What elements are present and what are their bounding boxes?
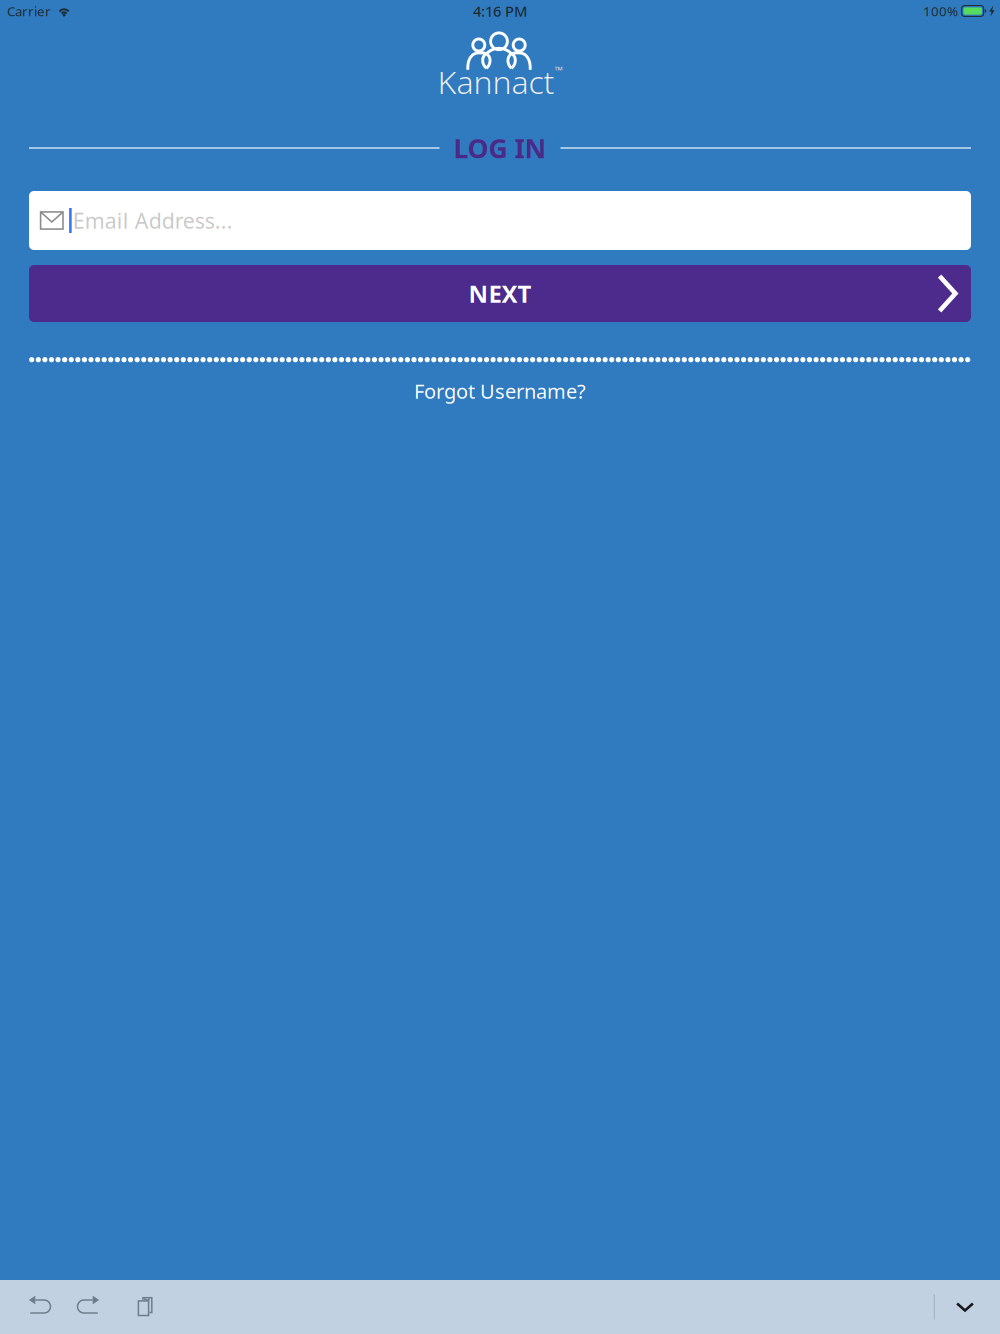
staticText: 4:16 PM — [473, 1, 527, 21]
button[interactable]: Undo — [9, 1280, 64, 1334]
staticText: LOG IN — [453, 130, 546, 166]
staticText: Carrier — [7, 2, 51, 20]
staticText: ™ — [554, 63, 562, 77]
button[interactable]: Redo — [64, 1280, 119, 1334]
button[interactable]: NEXT — [29, 265, 971, 322]
staticText: Kannact — [437, 60, 554, 103]
staticText: Forgot Username? — [414, 378, 586, 404]
staticText: NEXT — [468, 278, 531, 309]
button[interactable]: Paste — [119, 1280, 174, 1334]
button[interactable]: Hide keyboard — [935, 1280, 995, 1334]
staticText: 100% — [923, 2, 958, 20]
staticText: Email Address... — [73, 206, 233, 235]
button[interactable]: Forgot Username? — [0, 376, 1000, 406]
